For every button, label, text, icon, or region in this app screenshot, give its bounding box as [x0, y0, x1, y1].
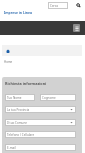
staticText: Richiesta informazioni — [5, 81, 47, 86]
button[interactable]: E-mail — [5, 144, 76, 151]
staticText: Telefono / Cellulare — [7, 133, 35, 137]
button[interactable]: Cerca — [48, 2, 68, 9]
button[interactable]: Il tuo Comune — [5, 119, 76, 126]
button[interactable]: Home — [2, 45, 82, 56]
staticText: Tuo Nome — [7, 96, 22, 100]
staticText: Il tuo Comune — [7, 121, 28, 125]
button[interactable]: Cognome — [40, 94, 76, 101]
staticText: Cerca — [50, 4, 58, 8]
button[interactable]: Menu — [73, 24, 80, 32]
other: Home — [6, 49, 10, 53]
staticText: Home — [4, 60, 13, 64]
button[interactable]: Tuo Nome — [5, 94, 35, 101]
staticText: E-mail — [7, 146, 16, 150]
staticText: Imprese in Linea — [4, 10, 33, 15]
staticText: Cognome — [42, 96, 56, 100]
button[interactable]: Telefono / Cellulare — [5, 131, 76, 138]
staticText: La tua Provincia — [7, 108, 30, 112]
button[interactable]: La tua Provincia — [5, 106, 76, 113]
button[interactable]: Search — [74, 2, 82, 9]
